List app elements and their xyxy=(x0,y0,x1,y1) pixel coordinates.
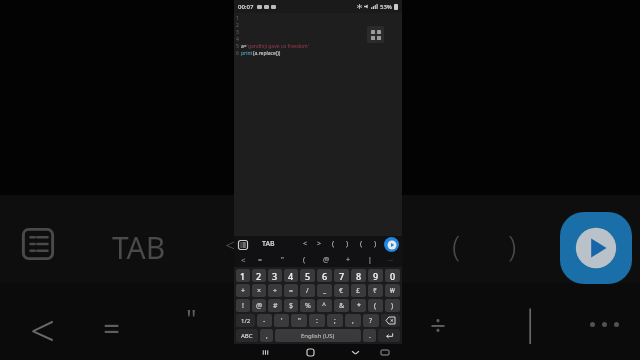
staticText: 53% xyxy=(380,3,392,11)
staticText: ^ xyxy=(322,301,327,311)
staticText: / xyxy=(306,286,309,296)
button[interactable]: Run xyxy=(384,237,399,252)
button[interactable]: ( xyxy=(293,252,315,267)
button[interactable]: ; xyxy=(327,314,343,327)
button[interactable]: @ xyxy=(315,252,337,267)
staticText: - xyxy=(263,316,266,326)
button[interactable]: = xyxy=(284,284,298,297)
staticText: " xyxy=(186,300,197,335)
button[interactable]: ₩ xyxy=(385,284,400,297)
button[interactable]: # xyxy=(268,299,282,312)
staticText: ₹ xyxy=(373,286,378,296)
button[interactable]: + xyxy=(337,252,359,267)
button[interactable]: " xyxy=(271,252,293,267)
button[interactable]: ^ xyxy=(317,299,332,312)
button[interactable]: 1/2 xyxy=(236,314,255,327)
staticText: ABC xyxy=(241,332,253,340)
staticText: = xyxy=(258,255,263,265)
staticText: 2 xyxy=(256,270,262,282)
button[interactable]: ) xyxy=(340,236,354,252)
staticText: < xyxy=(241,254,246,265)
staticText: € xyxy=(339,286,344,296)
button[interactable]: Keyboard layout xyxy=(377,344,393,360)
staticText: ; xyxy=(334,316,336,326)
button[interactable]: ( xyxy=(354,236,368,252)
button[interactable]: ₹ xyxy=(368,284,383,297)
staticText: | xyxy=(368,255,372,265)
button[interactable]: $ xyxy=(284,299,298,312)
button[interactable]: Grid menu xyxy=(367,26,384,43)
button[interactable]: ! xyxy=(236,299,250,312)
button[interactable]: TAB xyxy=(262,239,275,249)
staticText: @ xyxy=(256,301,263,311)
staticText: ) xyxy=(508,225,517,266)
button[interactable]: / xyxy=(300,284,315,297)
button[interactable]: Recents xyxy=(257,344,273,360)
staticText: + xyxy=(241,286,246,296)
staticText: ! xyxy=(242,301,244,311)
button[interactable]: 8 xyxy=(351,269,366,282)
button[interactable]: Hide keyboard xyxy=(347,344,363,360)
staticText: 6 xyxy=(322,270,328,282)
button[interactable]: 1 xyxy=(236,269,250,282)
staticText: 7 xyxy=(339,270,345,282)
button[interactable]: . xyxy=(363,329,376,342)
button[interactable]: + xyxy=(236,284,250,297)
button[interactable]: & xyxy=(334,299,349,312)
button[interactable]: % xyxy=(300,299,315,312)
button[interactable]: - xyxy=(257,314,272,327)
button[interactable]: 5 xyxy=(300,269,315,282)
button[interactable]: ) xyxy=(368,236,382,252)
button[interactable]: ' xyxy=(274,314,289,327)
button[interactable]: ABC xyxy=(236,329,258,342)
staticText: ) xyxy=(391,301,394,311)
button[interactable]: @ xyxy=(252,299,266,312)
button[interactable]: Backspace xyxy=(381,314,400,327)
staticText: ) xyxy=(374,239,377,249)
button[interactable]: : xyxy=(309,314,325,327)
staticText: £ xyxy=(356,286,361,296)
button[interactable]: × xyxy=(252,284,266,297)
staticText: ' xyxy=(281,316,283,326)
staticText: , xyxy=(352,316,354,326)
button[interactable]: _ xyxy=(317,284,332,297)
button[interactable]: ? xyxy=(363,314,379,327)
button[interactable]: € xyxy=(334,284,349,297)
button[interactable]: , xyxy=(345,314,361,327)
button[interactable]: Clipboard xyxy=(237,239,248,250)
button[interactable]: £ xyxy=(351,284,366,297)
button[interactable]: Enter xyxy=(378,329,400,342)
button[interactable]: , xyxy=(260,329,273,342)
staticText: × xyxy=(257,286,262,296)
button[interactable]: = xyxy=(250,252,271,267)
staticText: ( xyxy=(332,239,335,249)
button[interactable]: 9 xyxy=(368,269,383,282)
staticText: ) xyxy=(346,239,349,249)
staticText: 4 xyxy=(288,270,294,282)
button[interactable]: 4 xyxy=(284,269,298,282)
button[interactable]: Previous xyxy=(237,252,250,267)
button[interactable]: 0 xyxy=(385,269,400,282)
button[interactable]: ) xyxy=(385,299,400,312)
staticText: a= xyxy=(241,43,247,50)
button[interactable]: ( xyxy=(326,236,340,252)
button[interactable]: English (US) xyxy=(275,329,361,342)
button[interactable]: 3 xyxy=(268,269,282,282)
staticText: " xyxy=(281,255,284,265)
staticText: English (US) xyxy=(301,332,335,340)
button[interactable]: * xyxy=(351,299,366,312)
button[interactable]: Home xyxy=(302,344,318,360)
staticText: TAB xyxy=(112,227,166,268)
button[interactable]: | xyxy=(359,252,381,267)
button[interactable]: 6 xyxy=(317,269,332,282)
button[interactable]: ··· xyxy=(381,252,399,267)
button[interactable]: 2 xyxy=(252,269,266,282)
button[interactable]: " xyxy=(291,314,307,327)
button[interactable]: ÷ xyxy=(268,284,282,297)
button[interactable]: > xyxy=(312,236,326,252)
button[interactable]: ( xyxy=(368,299,383,312)
staticText: ( xyxy=(303,255,306,265)
staticText: TAB xyxy=(262,239,275,249)
button[interactable]: < xyxy=(298,236,312,252)
button[interactable]: 7 xyxy=(334,269,349,282)
